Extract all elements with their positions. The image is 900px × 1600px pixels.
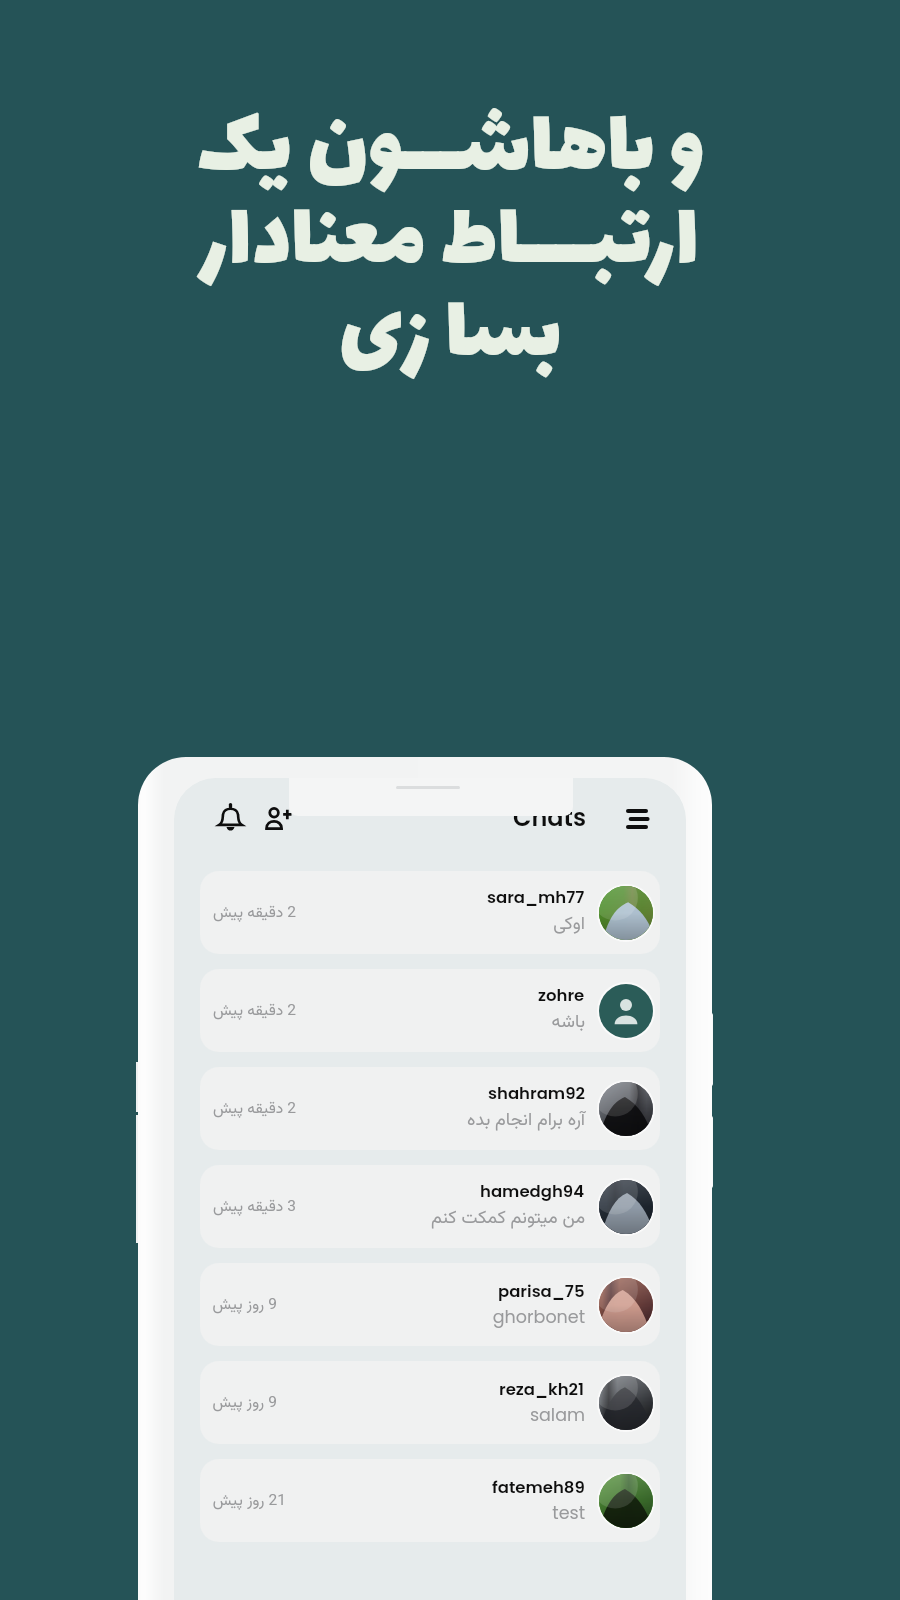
staticText: Chats (513, 801, 586, 835)
staticText: hamedgh94 (480, 1180, 585, 1203)
button[interactable]: Notifications (207, 795, 253, 841)
button[interactable]: 2 دقیقه پیش (200, 1067, 660, 1150)
staticText: 2 دقیقه پیش (212, 999, 296, 1023)
staticText: باشه (551, 1009, 585, 1037)
staticText: و باهاشـــون یک (196, 77, 704, 224)
staticText: salam (529, 1403, 585, 1428)
staticText: 9 روز پیش (212, 1293, 277, 1317)
staticText: اوکی (553, 911, 585, 939)
staticText: test (552, 1501, 585, 1526)
staticText: بسا زی (339, 263, 562, 410)
staticText: zohre (538, 984, 585, 1007)
button[interactable]: 2 دقیقه پیش (200, 969, 660, 1052)
staticText: reza_kh21 (499, 1378, 585, 1401)
staticText: fatemeh89 (492, 1476, 585, 1499)
staticText: parisa_75 (498, 1280, 585, 1303)
staticText: 2 دقیقه پیش (212, 1097, 296, 1121)
button[interactable]: 9 روز پیش (200, 1361, 660, 1444)
staticText: 21 روز پیش (212, 1489, 286, 1513)
staticText: 3 دقیقه پیش (212, 1195, 296, 1219)
button[interactable]: Add contact (256, 795, 302, 841)
staticText: ارتبــــاط معنادار (201, 170, 699, 317)
staticText: 9 روز پیش (212, 1391, 277, 1415)
staticText: من میتونم کمکت کنم (431, 1205, 585, 1233)
button[interactable]: 21 روز پیش (200, 1459, 660, 1542)
button[interactable]: 2 دقیقه پیش (200, 871, 660, 954)
button[interactable]: Chats (513, 800, 586, 836)
button[interactable]: 3 دقیقه پیش (200, 1165, 660, 1248)
button[interactable]: Menu (614, 796, 660, 842)
button[interactable]: 9 روز پیش (200, 1263, 660, 1346)
staticText: sara_mh77 (487, 886, 585, 909)
staticText: آره برام انجام بده (467, 1107, 585, 1135)
staticText: shahram92 (488, 1082, 585, 1105)
staticText: ghorbonet (492, 1305, 585, 1330)
staticText: 2 دقیقه پیش (212, 901, 296, 925)
